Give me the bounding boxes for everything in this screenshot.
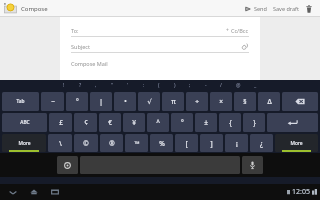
button[interactable]: To: [71,24,249,36]
staticText: ) [174,82,176,89]
staticText: Save draft [273,5,299,12]
staticText: • [124,97,127,106]
button[interactable]: ) [173,82,177,89]
staticText: 12:05 [292,187,310,197]
button[interactable]: | [90,92,112,111]
button[interactable]: { [219,113,241,132]
button[interactable]: ¿ [250,134,273,152]
button[interactable]: ~ [41,92,64,111]
button[interactable]: % [150,134,173,152]
staticText: ] [210,139,213,148]
staticText: ABC [20,119,30,126]
button[interactable]: Enter [267,113,318,132]
button[interactable]: - [204,82,208,89]
staticText: ¿ [260,139,263,148]
staticText: ° [181,118,184,127]
button[interactable]: Discard draft [302,0,316,17]
button[interactable]: ' [126,82,130,89]
button[interactable]: ¥ [123,113,145,132]
staticText: ^ [156,118,160,127]
staticText: [ [185,139,188,148]
button[interactable]: ABC [2,113,47,132]
staticText: § [243,97,247,106]
button[interactable]: More [275,134,318,152]
button[interactable]: Δ [258,92,280,111]
button[interactable]: ± [195,113,217,132]
button[interactable]: € [99,113,121,132]
staticText: Tab [16,98,25,105]
button[interactable]: Subject [71,40,249,52]
button[interactable]: / [219,82,223,89]
button[interactable]: © [74,134,98,152]
button[interactable]: • [114,92,136,111]
staticText: © [83,139,89,148]
button[interactable]: Recent apps [47,184,63,200]
button[interactable]: ¡ [225,134,248,152]
staticText: % [159,139,165,148]
button[interactable]: Tab [2,92,39,111]
button[interactable]: Save draft [270,0,302,17]
button[interactable]: ° [171,113,193,132]
button[interactable]: ( [157,82,161,89]
button[interactable]: £ [49,113,72,132]
staticText: £ [59,118,63,127]
staticText: ® [109,139,115,148]
staticText: × [219,97,223,106]
button[interactable]: 12:05 [287,184,317,200]
button[interactable]: × [210,92,232,111]
button[interactable]: " [110,82,115,89]
button[interactable]: } [243,113,265,132]
button[interactable]: [ [175,134,198,152]
button[interactable]: Attach file [241,42,249,51]
button[interactable]: π [162,92,184,111]
staticText: " [111,82,114,89]
button[interactable]: Voice input [242,156,263,174]
button[interactable]: _ [253,82,258,89]
staticText: : [143,82,145,89]
button[interactable]: ^ [147,113,169,132]
staticText: More [290,140,303,147]
button[interactable]: Backspace [282,92,318,111]
staticText: ± [204,118,208,127]
button[interactable]: ° [66,92,88,111]
button[interactable]: \ [48,134,72,152]
staticText: π [171,97,176,106]
button[interactable]: ! [62,82,66,89]
button[interactable]: Send [242,0,270,17]
button[interactable]: √ [138,92,160,111]
button[interactable]: : [142,82,146,89]
staticText: Compose [21,5,48,13]
staticText: ° [76,97,79,106]
button[interactable]: ÷ [186,92,208,111]
staticText: ; [189,82,191,89]
button[interactable]: @ [235,82,242,89]
staticText: Δ [267,97,272,106]
button[interactable]: More [2,134,46,152]
button[interactable]: Input settings [57,156,78,174]
button[interactable]: ] [200,134,223,152]
button[interactable]: ? [78,82,83,89]
staticText: \ [59,139,62,148]
staticText: + [226,27,229,34]
button[interactable]: Compose [3,3,49,14]
staticText: ' [127,82,129,89]
staticText: ¢ [84,118,88,127]
button[interactable]: Hide keyboard [5,184,21,200]
button[interactable]: + [226,27,249,34]
staticText: / [220,82,222,89]
staticText: √ [147,98,152,106]
button[interactable]: ; [188,82,192,89]
button[interactable]: Home [26,184,42,200]
button[interactable]: , [94,82,98,89]
button[interactable]: ® [100,134,123,152]
button[interactable]: § [234,92,256,111]
staticText: Cc/Bcc [231,27,249,34]
button[interactable]: ™ [125,134,148,152]
staticText: | [99,97,103,106]
button[interactable]: Compose Mail [71,60,108,67]
staticText: More [18,140,31,147]
staticText: Subject [71,43,90,50]
staticText: ? [79,82,82,89]
button[interactable]: ¢ [74,113,97,132]
